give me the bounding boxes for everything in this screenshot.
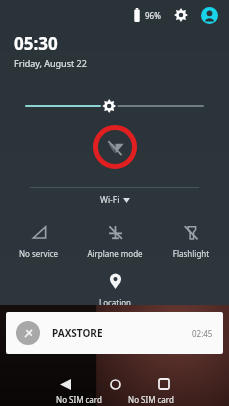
- staticText: No SIM card: [46, 394, 112, 405]
- staticText: 02:45: [192, 328, 213, 339]
- button[interactable]: Flashlight: [153, 220, 229, 259]
- staticText: Airplane mode: [77, 248, 153, 259]
- button[interactable]: Recent apps: [151, 371, 177, 397]
- staticText: Location: [77, 297, 153, 305]
- staticText: Flashlight: [153, 248, 229, 259]
- staticText: PAXSTORE: [52, 326, 103, 340]
- button[interactable]: Settings: [171, 5, 191, 25]
- staticText: 05:30: [14, 32, 58, 55]
- button[interactable]: PAXSTORE: [6, 312, 223, 354]
- staticText: Wi-Fi: [100, 194, 120, 206]
- staticText: Friday, August 22: [14, 57, 87, 69]
- button[interactable]: Airplane mode: [77, 220, 153, 259]
- button[interactable]: No service: [0, 220, 77, 259]
- staticText: No service: [0, 248, 77, 259]
- button[interactable]: Brightness: [0, 91, 229, 121]
- button[interactable]: Location: [77, 269, 153, 305]
- button[interactable]: Back: [52, 371, 78, 397]
- staticText: No SIM card: [118, 394, 184, 405]
- button[interactable]: User: [199, 5, 219, 25]
- button[interactable]: [93, 125, 137, 169]
- button[interactable]: Home: [102, 371, 128, 397]
- staticText: 96%: [145, 10, 161, 21]
- button[interactable]: Wi-Fi: [0, 194, 229, 206]
